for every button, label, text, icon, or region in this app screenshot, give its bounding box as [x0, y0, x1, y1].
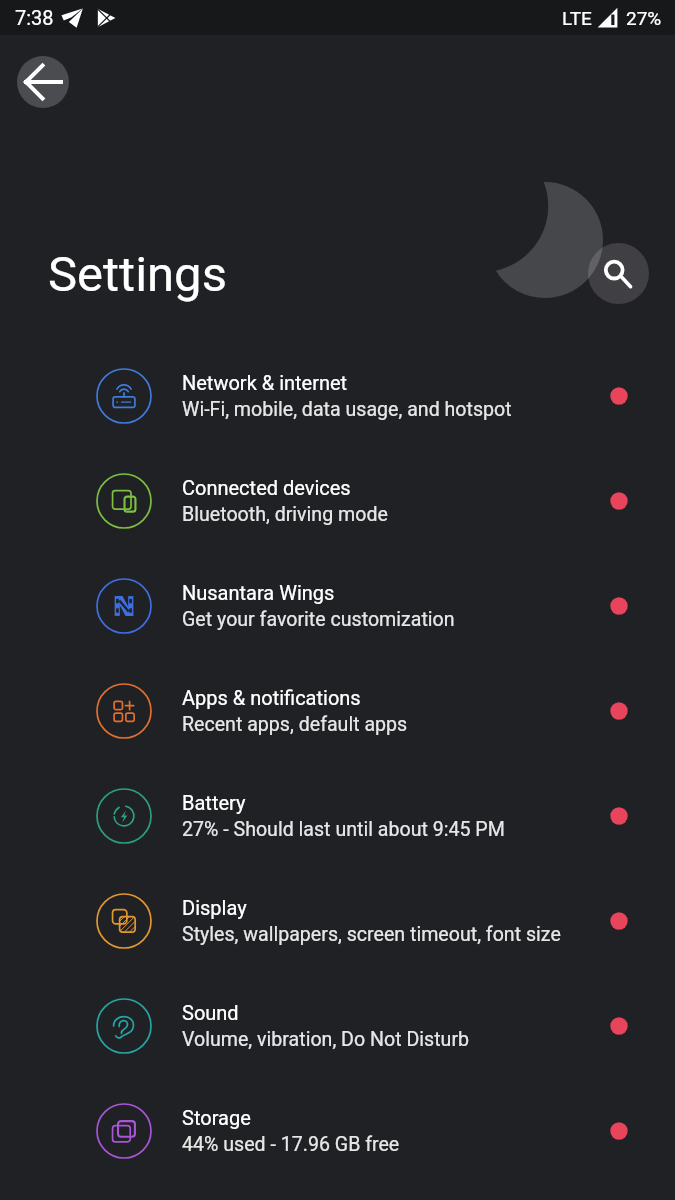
staticText: Nusantara Wings — [182, 581, 335, 604]
button[interactable]: Sound — [0, 973, 675, 1078]
button[interactable]: Back — [17, 56, 69, 108]
button[interactable]: Nusantara Wings — [0, 553, 675, 658]
button[interactable]: Connected devices — [0, 448, 675, 553]
button[interactable]: Display — [0, 868, 675, 973]
staticText: Storage — [182, 1106, 251, 1129]
staticText: LTE — [562, 7, 592, 29]
staticText: Apps & notifications — [182, 686, 361, 709]
button[interactable]: Network & internet — [0, 343, 675, 448]
staticText: 27% — [626, 7, 662, 29]
staticText: Connected devices — [182, 476, 351, 499]
staticText: Settings — [48, 246, 227, 303]
staticText: Battery — [182, 791, 246, 814]
staticText: Recent apps, default apps — [182, 713, 408, 736]
staticText: 44% used - 17.96 GB free — [182, 1133, 400, 1156]
staticText: Styles, wallpapers, screen timeout, font… — [182, 923, 561, 946]
staticText: Get your favorite customization — [182, 608, 455, 631]
staticText: Network & internet — [182, 371, 348, 394]
staticText: Sound — [182, 1001, 239, 1024]
staticText: Wi-Fi, mobile, data usage, and hotspot — [182, 398, 512, 421]
staticText: 27% - Should last until about 9:45 PM — [182, 818, 505, 841]
staticText: Volume, vibration, Do Not Disturb — [182, 1028, 470, 1051]
staticText: 7:38 — [15, 6, 54, 29]
button[interactable]: Storage — [0, 1078, 675, 1183]
staticText: Display — [182, 896, 247, 919]
button[interactable]: Search — [588, 243, 649, 304]
staticText: Bluetooth, driving mode — [182, 503, 388, 526]
button[interactable]: Apps & notifications — [0, 658, 675, 763]
button[interactable]: Battery — [0, 763, 675, 868]
